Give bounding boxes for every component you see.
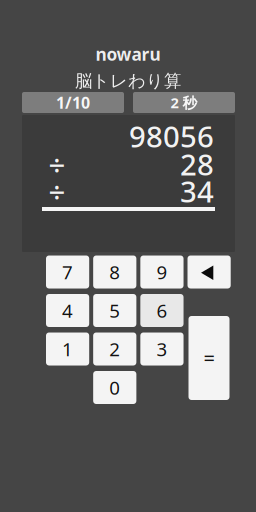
button[interactable]: 2 秒 [133,92,235,113]
staticText: ÷ [48,144,65,183]
staticText: 8 [109,260,120,284]
staticText: 3 [156,337,167,361]
button[interactable]: 0 [93,371,136,404]
button[interactable]: 3 [140,332,183,365]
button[interactable]: Equals [188,316,229,400]
button[interactable]: 8 [93,255,136,288]
staticText: 1 [62,337,73,361]
button[interactable]: 6 [140,294,183,327]
staticText: 6 [156,298,167,323]
button[interactable]: 7 [46,255,89,288]
button[interactable]: 9 [140,255,183,288]
staticText: 34 [180,171,214,210]
staticText: 1/10 [56,92,90,113]
staticText: nowaru [95,42,160,65]
button[interactable]: 2 [93,332,136,365]
staticText: 2 秒 [170,93,197,112]
staticText: = [203,345,214,371]
staticText: 7 [62,260,73,284]
button[interactable]: Backspace [187,255,231,288]
staticText: ÷ [48,171,65,210]
button[interactable]: 4 [46,294,89,327]
button[interactable]: 1 [46,332,89,365]
staticText: 9 [156,260,167,284]
button[interactable]: 5 [93,294,136,327]
staticText: 5 [109,298,120,323]
staticText: 2 [109,337,120,361]
staticText: 4 [62,298,73,323]
button[interactable]: 1/10 [22,92,124,113]
staticText: 脳トレわり算 [75,70,181,92]
staticText: 98056 [129,116,214,155]
staticText: 0 [109,375,120,400]
staticText: 28 [180,144,214,183]
